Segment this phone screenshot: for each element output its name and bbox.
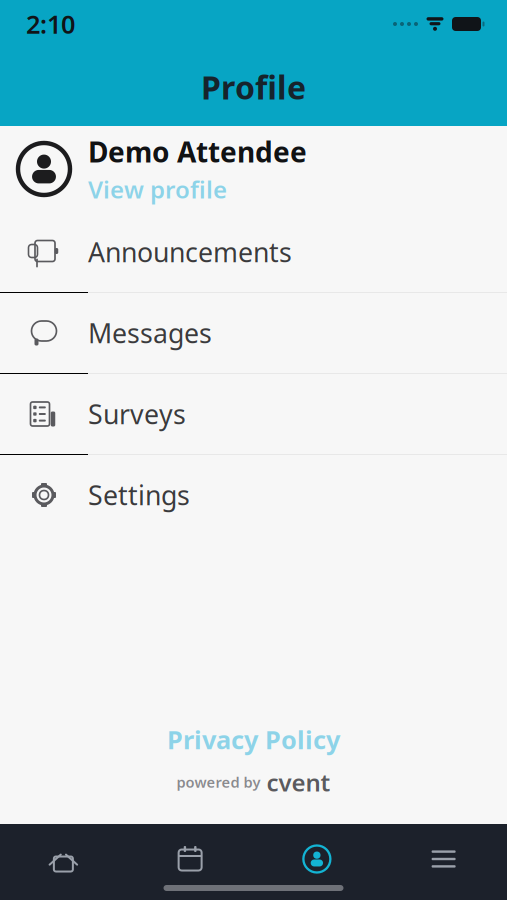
staticText: Privacy Policy: [167, 722, 340, 756]
button[interactable]: Schedule: [127, 836, 254, 882]
staticText: Surveys: [88, 396, 186, 432]
button[interactable]: Home: [0, 836, 127, 882]
staticText: powered by: [176, 772, 260, 792]
staticText: Announcements: [88, 234, 292, 270]
button[interactable]: Settings: [0, 455, 507, 535]
button[interactable]: Privacy Policy: [161, 720, 346, 758]
button[interactable]: Demo Attendee: [0, 126, 507, 212]
staticText: Settings: [88, 477, 190, 513]
staticText: View profile: [88, 173, 227, 205]
staticText: Demo Attendee: [88, 133, 307, 170]
staticText: Profile: [201, 66, 306, 108]
staticText: Messages: [88, 315, 212, 351]
button[interactable]: Messages: [0, 293, 507, 374]
button[interactable]: Profile: [253, 836, 380, 882]
button[interactable]: Surveys: [0, 374, 507, 455]
button[interactable]: Announcements: [0, 212, 507, 293]
staticText: 2:10: [26, 7, 75, 41]
button[interactable]: More: [380, 836, 507, 882]
staticText: cvent: [266, 766, 330, 798]
